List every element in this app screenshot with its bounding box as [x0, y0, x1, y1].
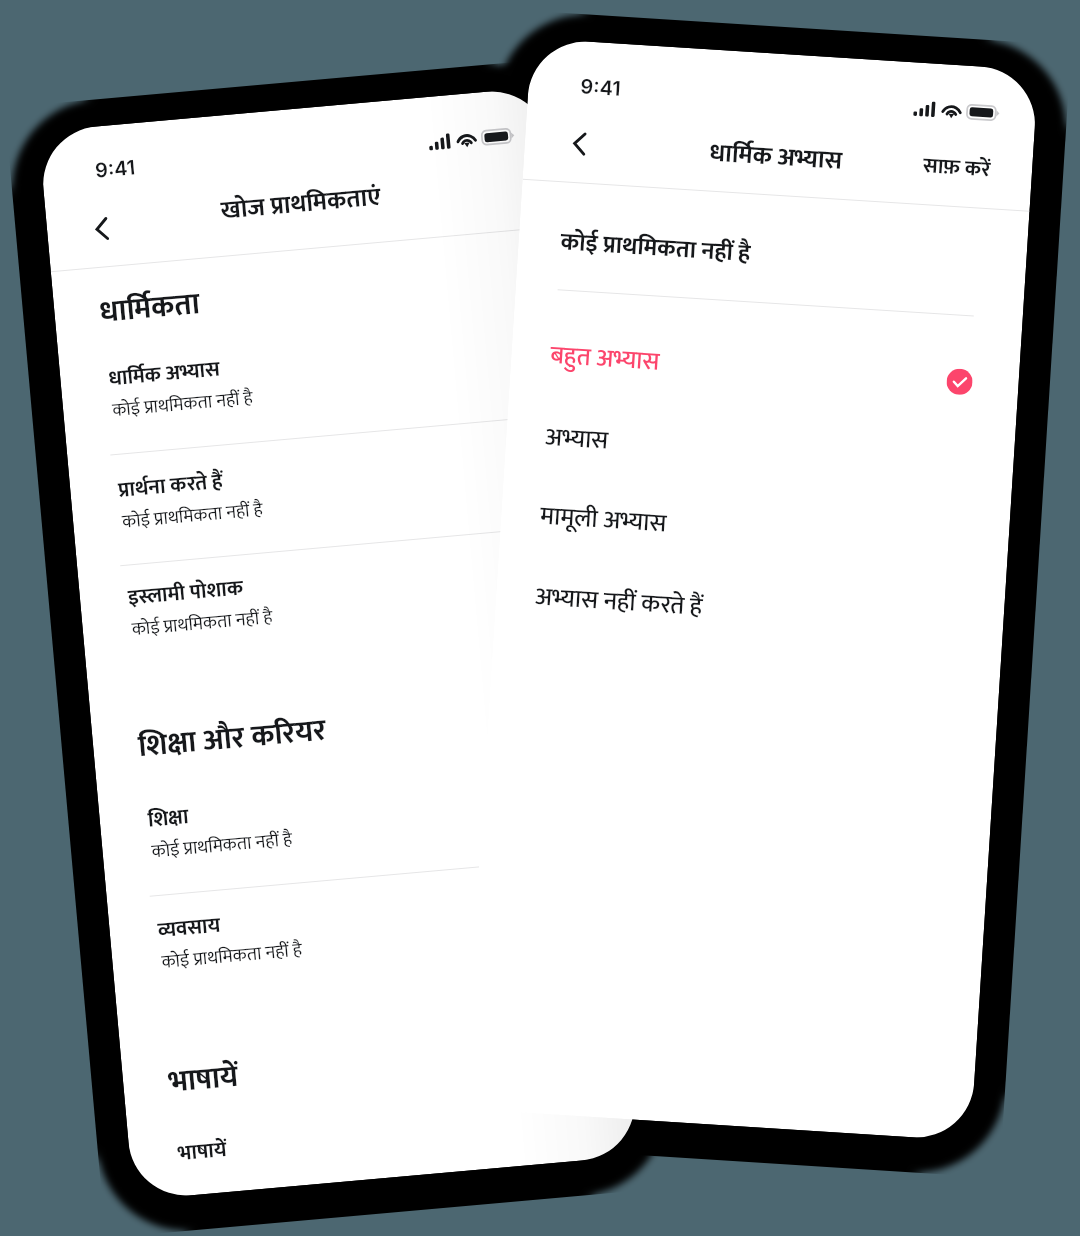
staticText: अभ्यास: [544, 417, 610, 463]
button[interactable]: मामूली अभ्यास: [499, 475, 1011, 579]
staticText: खोज प्राथमिकताएं: [219, 176, 383, 233]
button[interactable]: इस्लामी पोशाक: [77, 518, 592, 666]
button[interactable]: प्रार्थना करते हैं: [67, 410, 582, 559]
staticText: 9:41: [94, 155, 137, 183]
staticText: शिक्षा: [146, 799, 190, 838]
staticText: कोई प्राथमिकता नहीं है: [559, 222, 752, 274]
button[interactable]: धार्मिक अभ्यास: [57, 299, 572, 447]
staticText: बहुत अभ्यास: [549, 335, 661, 384]
staticText: धार्मिक अभ्यास: [708, 132, 844, 183]
staticText: व्यवसाय: [156, 908, 222, 948]
staticText: मामूली अभ्यास: [539, 495, 668, 545]
staticText: कोई प्राथमिकता नहीं है: [121, 494, 264, 538]
staticText: कोई प्राथमिकता नहीं है: [131, 602, 274, 645]
staticText: कोई प्राथमिकता नहीं है: [150, 824, 294, 867]
staticText: भाषायें: [176, 1132, 228, 1171]
staticText: इस्लामी पोशाक: [127, 570, 245, 615]
button[interactable]: व्यवसाय: [106, 850, 622, 999]
button[interactable]: भाषायें: [126, 1074, 640, 1200]
staticText: कोई प्राथमिकता नहीं है: [111, 383, 254, 426]
button[interactable]: Back: [94, 217, 109, 241]
button[interactable]: Back: [572, 132, 587, 156]
staticText: कोई प्राथमिकता नहीं है: [160, 935, 303, 978]
staticText: प्रार्थना करते हैं: [117, 464, 225, 508]
other: Selected: [946, 368, 973, 396]
button[interactable]: बहुत अभ्यास: [509, 314, 1021, 418]
staticText: धार्मिक अभ्यास: [107, 351, 222, 396]
button[interactable]: साफ़ करें: [923, 136, 993, 175]
staticText: 9:41: [580, 74, 622, 101]
staticText: शिक्षा और करियर: [136, 705, 329, 772]
staticText: साफ़ करें: [922, 148, 992, 187]
staticText: अभ्यास नहीं करते हैं: [534, 576, 704, 629]
button[interactable]: अभ्यास नहीं करते हैं: [494, 556, 1006, 660]
staticText: धार्मिकता: [97, 279, 202, 338]
staticText: भाषायें: [166, 1052, 240, 1108]
button[interactable]: शिक्षा: [97, 740, 612, 889]
button[interactable]: अभ्यास: [504, 396, 1016, 500]
